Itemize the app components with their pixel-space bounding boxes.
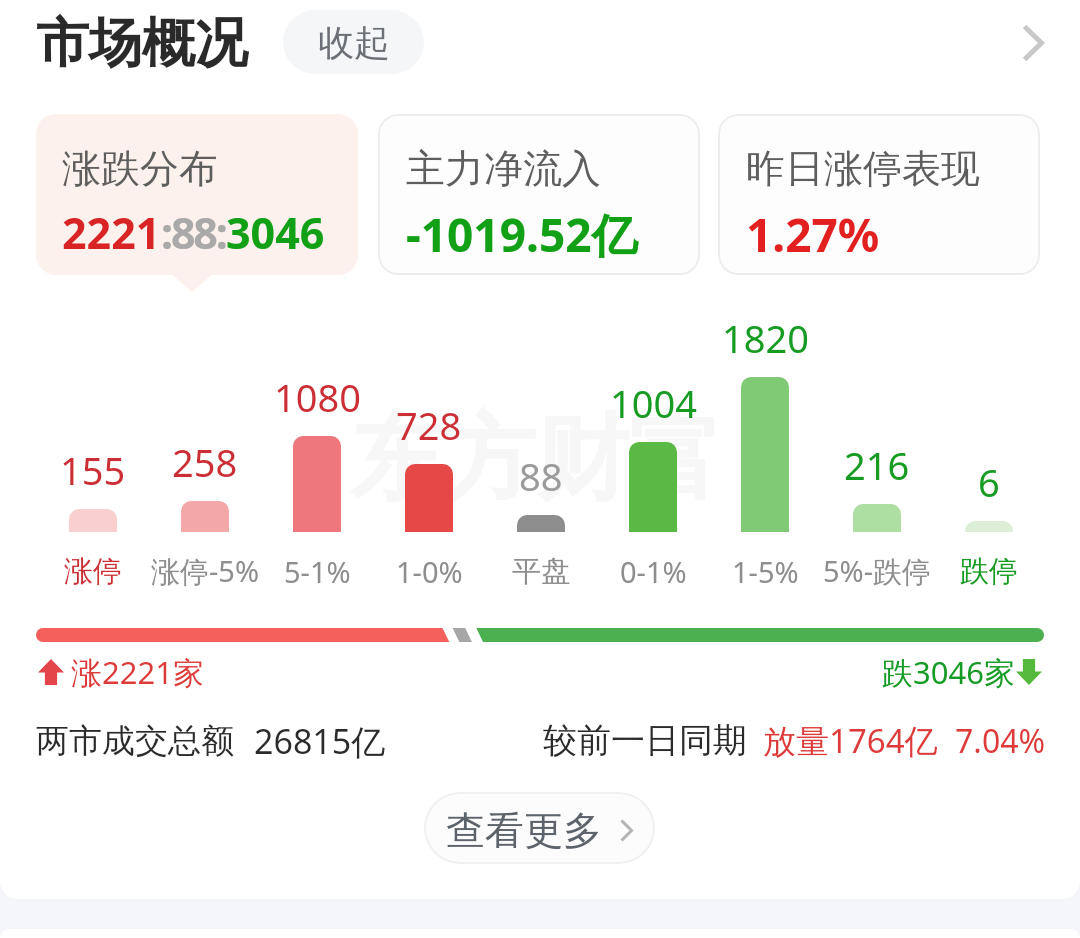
button[interactable]: Expand — [997, 7, 1069, 79]
staticText: 258 — [172, 436, 238, 478]
staticText: 7.04% — [955, 719, 1046, 763]
staticText: 1-0% — [396, 552, 463, 591]
staticText: 1820 — [722, 312, 809, 354]
staticText: 0-1% — [620, 552, 687, 591]
staticText: 216 — [844, 439, 910, 481]
staticText: 收起 — [318, 20, 390, 65]
staticText: 88 — [519, 450, 563, 492]
staticText: 6 — [978, 456, 1000, 498]
staticText: 2221 — [62, 203, 161, 262]
staticText: 26815亿 — [254, 718, 386, 764]
staticText: 涨2221家 — [71, 651, 204, 693]
staticText: 涨跌分布 — [62, 144, 218, 193]
staticText: 1004 — [610, 377, 697, 419]
staticText: 3046 — [226, 203, 325, 262]
staticText: 昨日涨停表现 — [746, 144, 980, 193]
button[interactable]: 涨跌分布 — [36, 114, 358, 275]
staticText: 较前一日同期 — [543, 719, 747, 762]
button[interactable]: 728 — [373, 320, 485, 591]
staticText: 155 — [60, 444, 126, 486]
button[interactable]: 216 — [821, 320, 933, 591]
staticText: 主力净流入 — [406, 144, 601, 193]
button[interactable]: 市场概况 — [34, 8, 250, 79]
staticText: 1-5% — [732, 552, 799, 591]
button[interactable]: 收起 — [283, 10, 424, 74]
button[interactable]: 查看更多 — [424, 792, 655, 864]
staticText: 两市成交总额 — [36, 720, 234, 762]
staticText: 放量1764亿 — [763, 718, 938, 763]
staticText: 5%-跌停 — [823, 551, 932, 591]
button[interactable]: 258 — [149, 320, 261, 591]
staticText: 查看更多 — [446, 806, 602, 855]
staticText: 平盘 — [512, 553, 570, 590]
button[interactable]: 6 — [933, 320, 1045, 591]
staticText: 涨停-5% — [151, 551, 260, 591]
staticText: 1080 — [274, 371, 361, 413]
button[interactable]: 昨日涨停表现 — [718, 114, 1040, 275]
button[interactable]: 1820 — [709, 320, 821, 591]
button[interactable]: 1080 — [261, 320, 373, 591]
staticText: 跌停 — [960, 553, 1018, 590]
button[interactable]: 155 — [37, 320, 149, 591]
staticText: 涨停 — [64, 553, 122, 590]
button[interactable]: 1004 — [597, 320, 709, 591]
staticText: :88: — [161, 203, 226, 262]
staticText: 5-1% — [284, 552, 351, 591]
staticText: 市场概况 — [36, 10, 248, 77]
staticText: -1019.52亿 — [406, 203, 638, 266]
staticText: 跌3046家 — [882, 651, 1015, 693]
button[interactable]: 主力净流入 — [378, 114, 700, 275]
staticText: 东方财富 — [350, 400, 722, 517]
staticText: 1.27% — [746, 203, 880, 266]
button[interactable]: 88 — [485, 320, 597, 591]
staticText: 728 — [396, 399, 462, 441]
